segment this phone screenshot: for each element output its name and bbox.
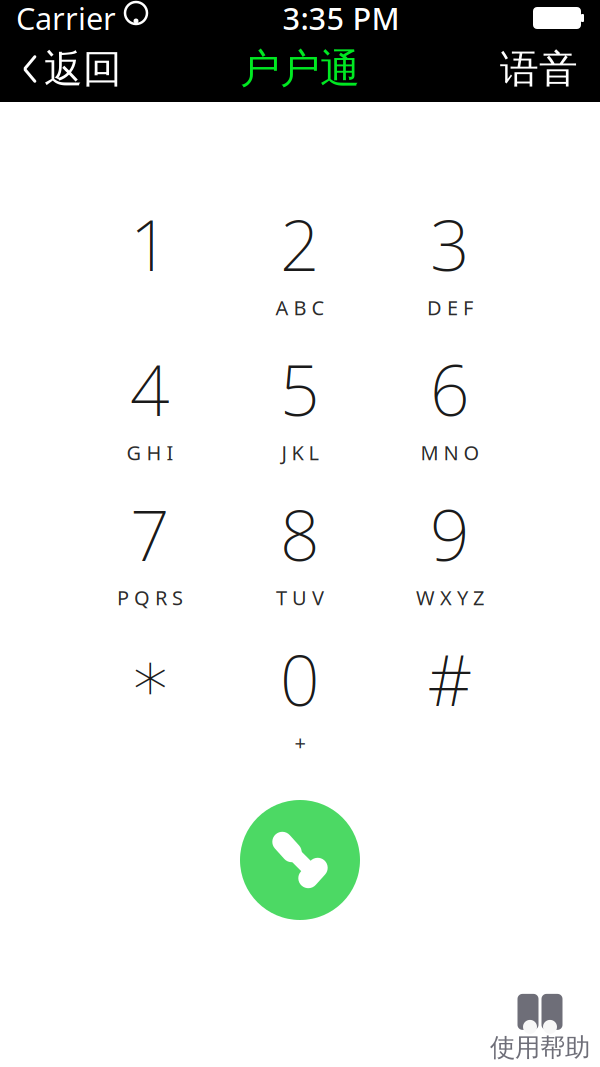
- button[interactable]: 2: [225, 180, 375, 325]
- button[interactable]: 语音: [482, 35, 596, 103]
- button[interactable]: 6: [375, 325, 525, 470]
- staticText: #: [427, 633, 472, 725]
- staticText: A B C: [275, 294, 324, 321]
- staticText: 3: [430, 198, 470, 290]
- staticText: W X Y Z: [416, 584, 484, 611]
- staticText: 0: [280, 633, 320, 725]
- button[interactable]: 3: [375, 180, 525, 325]
- button[interactable]: 1: [75, 180, 225, 325]
- button[interactable]: 5: [225, 325, 375, 470]
- button[interactable]: 9: [375, 470, 525, 615]
- staticText: 8: [280, 488, 320, 580]
- staticText: P Q R S: [117, 584, 183, 611]
- staticText: 使用帮助: [490, 1032, 590, 1063]
- staticText: 3:35 PM: [282, 0, 399, 38]
- staticText: 9: [430, 488, 470, 580]
- button[interactable]: #: [375, 615, 525, 760]
- staticText: Carrier: [16, 0, 116, 38]
- button[interactable]: Call: [240, 800, 360, 920]
- staticText: D E F: [427, 294, 473, 321]
- staticText: 返回: [44, 45, 122, 93]
- button[interactable]: 4: [75, 325, 225, 470]
- button[interactable]: 使用帮助: [490, 994, 600, 1067]
- staticText: 5: [280, 343, 320, 435]
- staticText: 2: [280, 198, 320, 290]
- staticText: 4: [130, 343, 170, 435]
- button[interactable]: ∗: [75, 615, 225, 760]
- button[interactable]: 0: [225, 615, 375, 760]
- staticText: +: [294, 729, 305, 756]
- button[interactable]: 7: [75, 470, 225, 615]
- staticText: 户户通: [240, 44, 360, 93]
- button[interactable]: 8: [225, 470, 375, 615]
- staticText: G H I: [126, 439, 173, 466]
- staticText: 语音: [500, 45, 578, 93]
- staticText: 7: [130, 488, 170, 580]
- staticText: M N O: [420, 439, 479, 466]
- staticText: T U V: [276, 584, 324, 611]
- staticText: ∗: [128, 637, 171, 716]
- button[interactable]: 返回: [4, 35, 140, 103]
- staticText: J K L: [281, 439, 318, 466]
- staticText: 6: [430, 343, 470, 435]
- staticText: 1: [130, 198, 170, 290]
